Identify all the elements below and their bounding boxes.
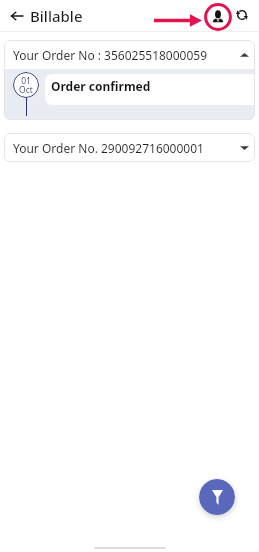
button[interactable]: Profile <box>204 3 232 31</box>
staticText: Order confirmed <box>51 78 151 94</box>
button[interactable]: Back <box>5 4 29 28</box>
button[interactable]: Refresh <box>232 5 252 25</box>
staticText: Billable <box>30 6 83 26</box>
button[interactable]: Your Order No : 356025518000059 <box>4 40 255 69</box>
staticText: Your Order No : 356025518000059 <box>13 47 208 63</box>
button[interactable]: Your Order No. 290092716000001 <box>4 133 255 162</box>
button[interactable]: Order confirmed <box>45 74 255 105</box>
staticText: 01 Oct <box>19 75 33 96</box>
button[interactable]: Filter <box>199 479 235 515</box>
staticText: Your Order No. 290092716000001 <box>13 140 204 156</box>
